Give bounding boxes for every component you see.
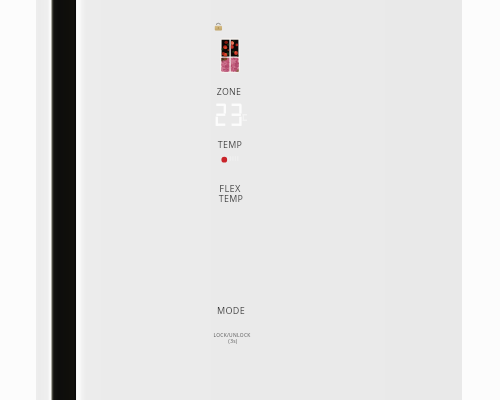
button[interactable]: ZONE <box>169 86 289 400</box>
staticText: TEMP <box>171 192 291 400</box>
button[interactable]: TEMP <box>171 192 291 400</box>
button[interactable] <box>220 38 240 73</box>
staticText: ZONE <box>169 86 289 400</box>
staticText: (3s) <box>173 338 293 400</box>
staticText: MODE <box>171 304 291 400</box>
staticText: LOCK/UNLOCK <box>172 332 292 400</box>
button[interactable]: Lock child lock <box>213 21 224 32</box>
button[interactable]: TEMP <box>170 138 290 400</box>
staticText: TEMP <box>170 138 290 400</box>
button[interactable]: LOCK/UNLOCK <box>172 332 292 400</box>
button[interactable]: MODE <box>171 304 291 400</box>
button[interactable]: Fridge zone active <box>215 152 245 168</box>
staticText: FLEX <box>170 182 290 400</box>
button[interactable]: (3s) <box>173 338 293 400</box>
button[interactable]: FLEX <box>170 182 290 400</box>
